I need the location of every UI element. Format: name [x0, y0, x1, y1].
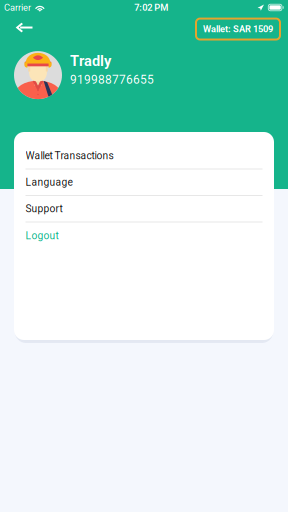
staticText: Carrier [4, 2, 31, 13]
staticText: 7:02 PM [134, 2, 168, 13]
staticText: Wallet Transactions [25, 150, 113, 162]
staticText: Wallet: SAR 1509 [203, 24, 273, 34]
staticText: Language [25, 176, 72, 188]
staticText: Support [25, 203, 62, 215]
button[interactable]: Wallet: SAR 1509 [196, 19, 280, 39]
staticText: 919988776655 [70, 73, 154, 87]
button[interactable]: Logout [14, 222, 274, 249]
button[interactable]: Wallet Transactions [14, 143, 274, 169]
staticText: Logout [25, 230, 58, 242]
button[interactable]: Back [0, 18, 45, 40]
staticText: Tradly [70, 52, 111, 70]
button[interactable]: Support [14, 196, 274, 222]
button[interactable]: Language [14, 169, 274, 196]
